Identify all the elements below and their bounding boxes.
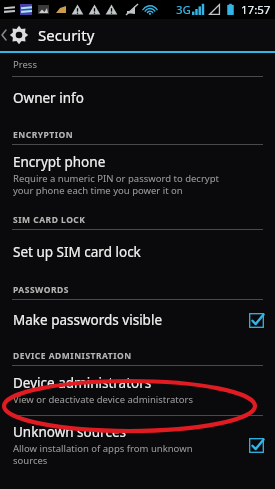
staticText: Make passwords visible [13,311,163,329]
button[interactable]: Unknown sources [0,416,275,475]
button[interactable]: Set up SIM card lock [0,230,275,275]
staticText: Unknown sources [13,423,126,441]
button[interactable]: Make passwords visible [0,300,275,341]
button[interactable]: Encrypt phone [0,145,275,205]
staticText: Set up SIM card lock [13,243,141,261]
staticText: SIM CARD LOCK [13,214,86,226]
staticText: 17:57 [241,2,271,18]
staticText: ENCRYPTION [13,129,74,141]
button[interactable]: Navigate up [0,19,36,51]
staticText: DEVICE ADMINISTRATION [13,350,132,362]
staticText: Owner info [13,89,84,107]
staticText: View or deactivate device administrators [13,393,193,406]
staticText: Security [38,25,95,45]
staticText: Allow installation of apps from unknown … [13,442,193,467]
button[interactable]: Owner info [0,77,275,120]
staticText: 3G [176,2,191,18]
staticText: Press [13,58,37,71]
staticText: PASSWORDS [13,284,69,296]
button[interactable]: Device administrators [0,366,275,415]
staticText: Encrypt phone [13,153,106,171]
staticText: Device administrators [13,374,152,392]
staticText: Require a numeric PIN or password to dec… [13,172,219,197]
